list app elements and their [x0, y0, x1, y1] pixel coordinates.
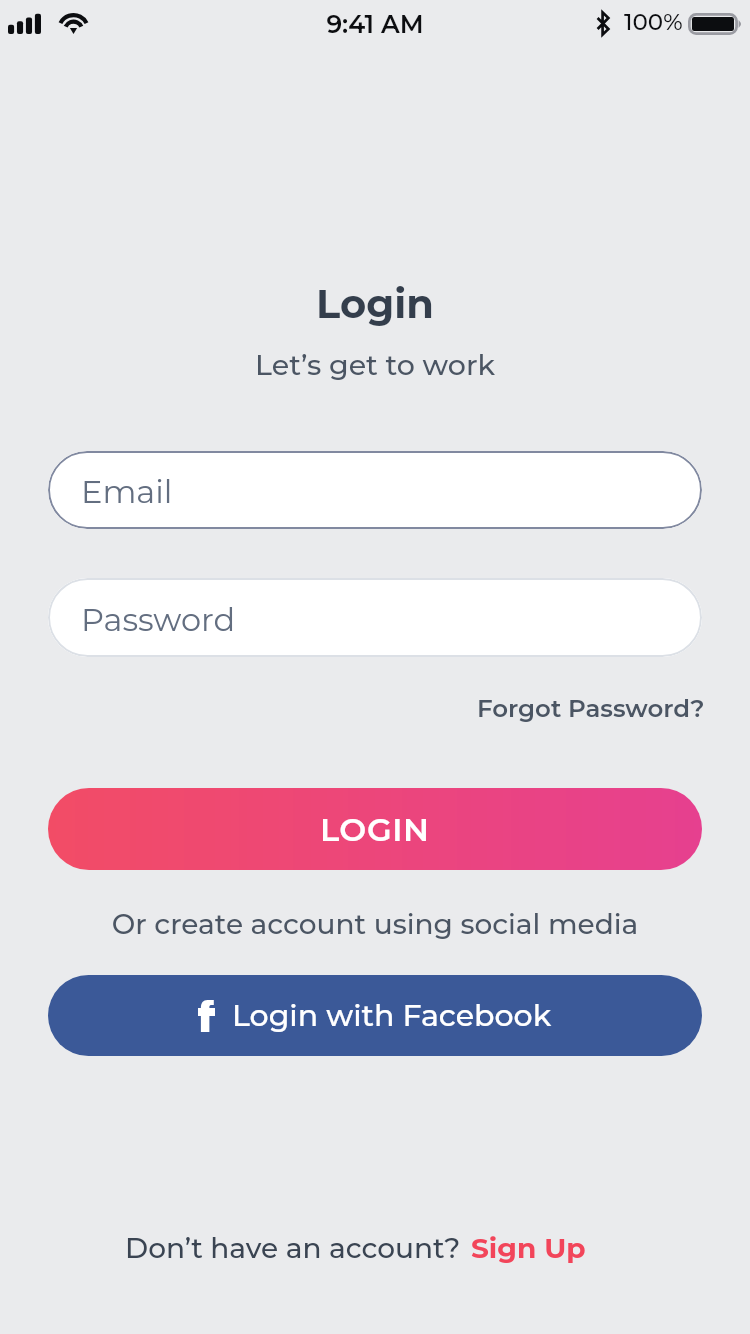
button[interactable]: Email	[48, 451, 702, 529]
staticText: Password	[81, 600, 236, 639]
other: Bluetooth	[596, 11, 610, 36]
button[interactable]: Forgot Password?	[473, 689, 709, 727]
staticText: Let’s get to work	[0, 347, 750, 382]
button[interactable]: Facebook	[48, 975, 702, 1056]
staticText: Sign Up	[471, 1231, 586, 1265]
other: Wi-Fi	[59, 13, 88, 34]
button[interactable]: Don’t have an account?	[125, 1231, 586, 1265]
other: Battery full	[688, 13, 742, 35]
staticText: Login with Facebook	[232, 997, 552, 1034]
staticText: Don’t have an account?	[125, 1231, 461, 1265]
staticText: 100%	[624, 8, 683, 36]
other: Facebook	[198, 1000, 215, 1032]
button[interactable]: LOGIN	[48, 788, 702, 870]
other: Cellular signal	[8, 13, 41, 34]
staticText: Forgot Password?	[477, 693, 705, 723]
staticText: Email	[81, 472, 173, 511]
staticText: 9:41 AM	[0, 9, 750, 39]
staticText: LOGIN	[320, 810, 430, 849]
button[interactable]: Password	[48, 578, 702, 657]
staticText: Or create account using social media	[0, 907, 750, 941]
staticText: Login	[0, 279, 750, 328]
